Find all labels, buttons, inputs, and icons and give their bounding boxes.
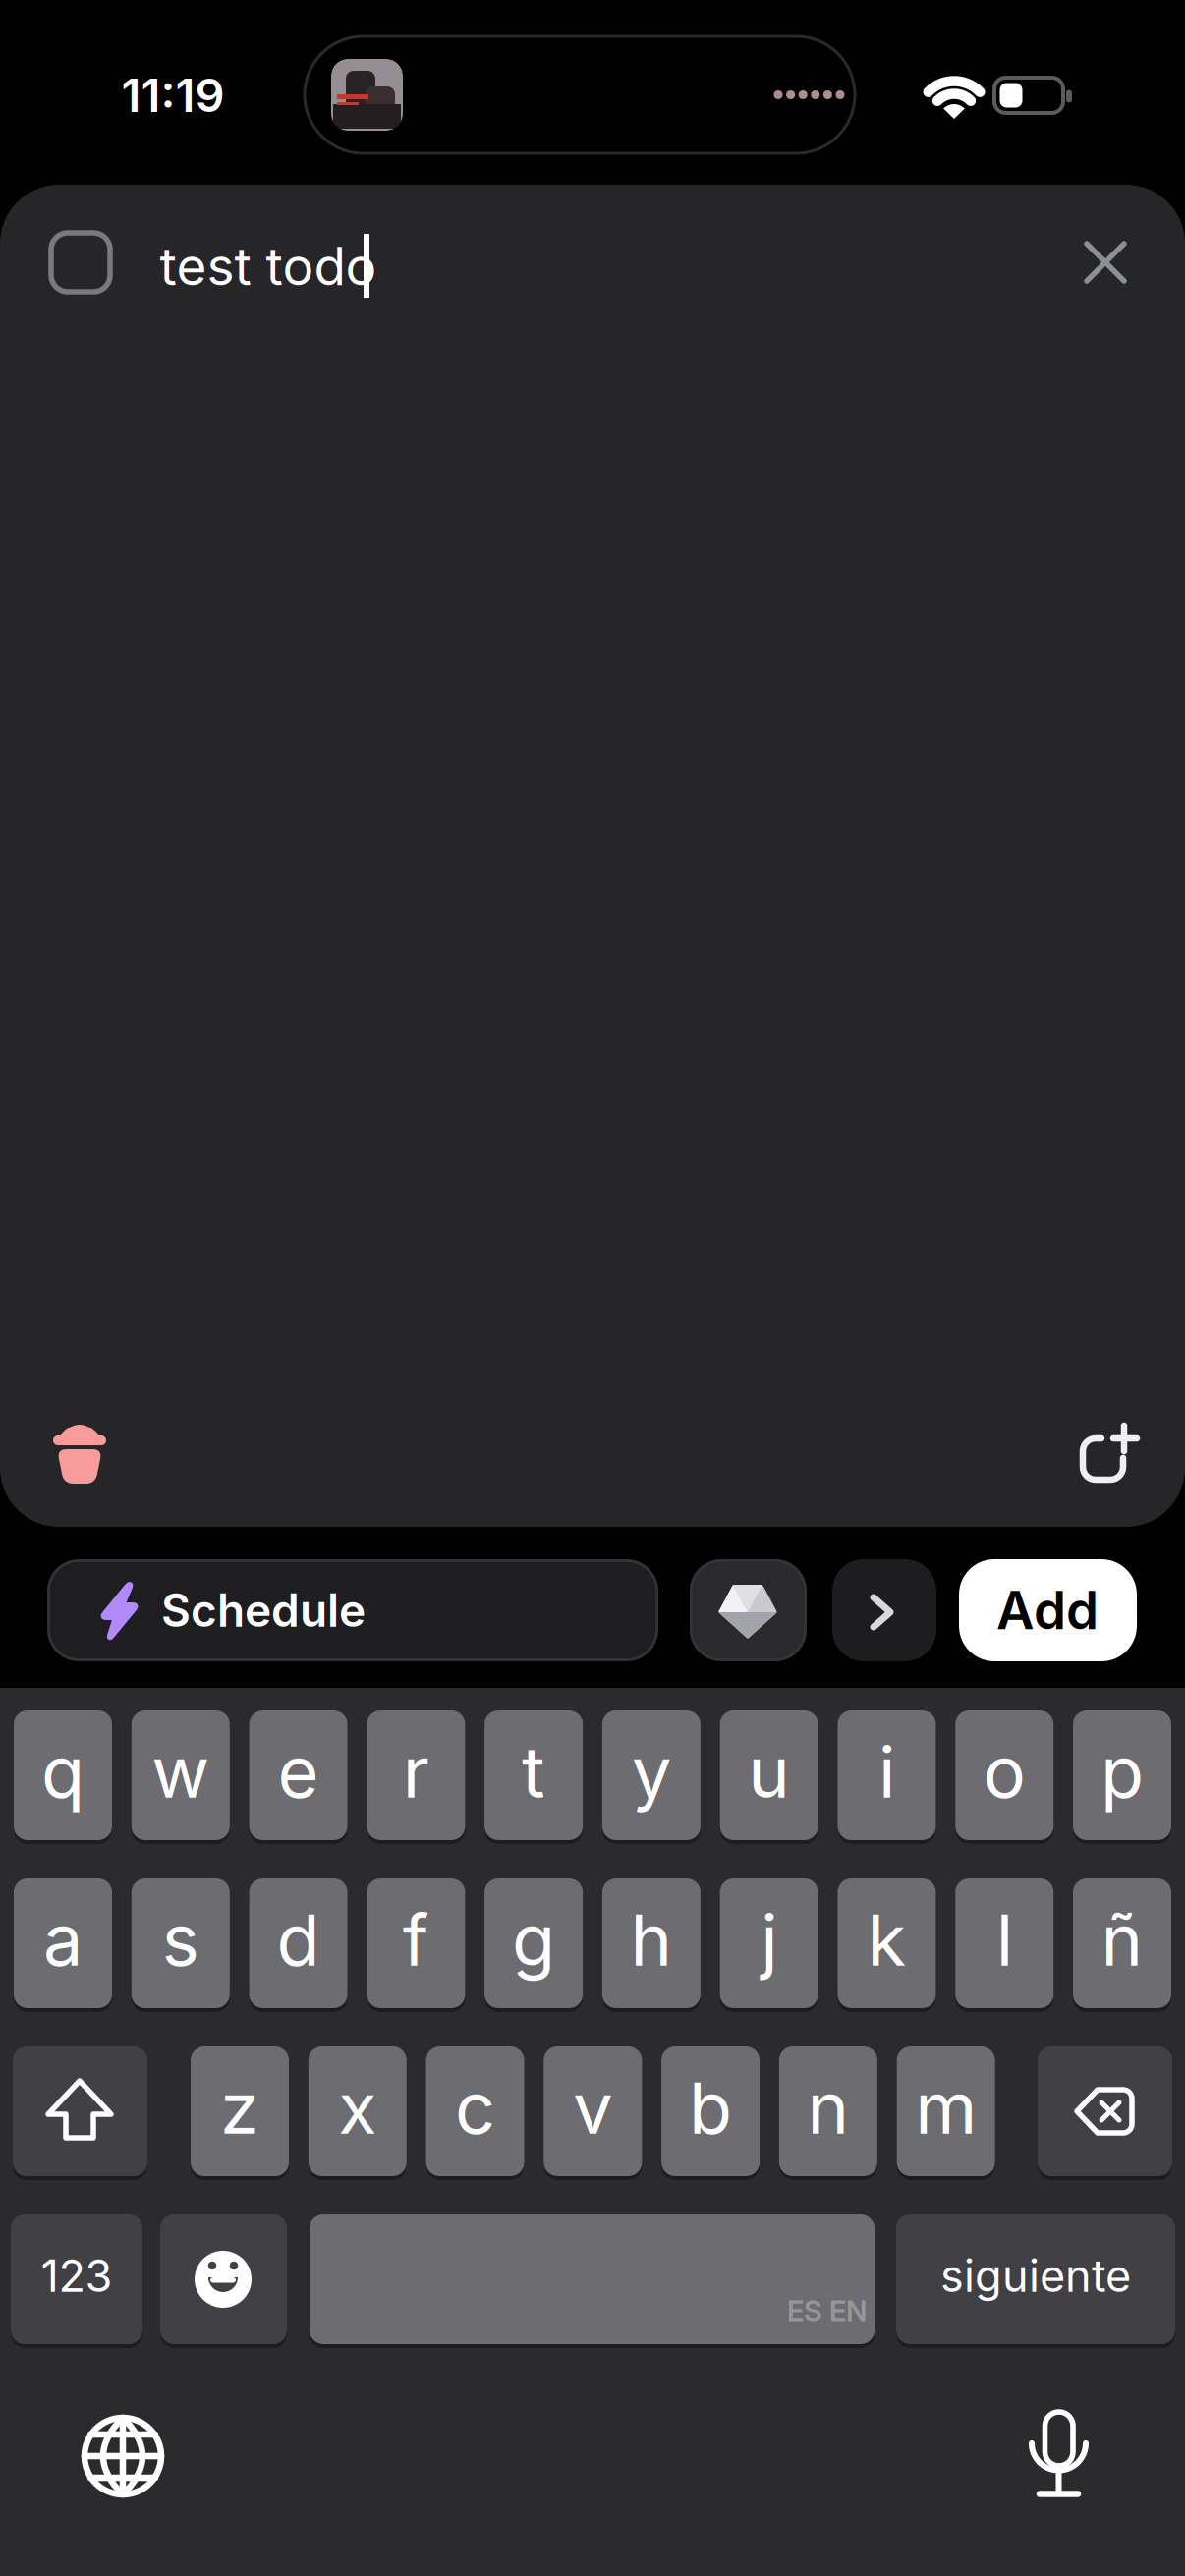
- staticText: h: [630, 1897, 672, 1983]
- staticText: j: [761, 1897, 777, 1983]
- staticText: k: [867, 1897, 906, 1983]
- staticText: ES EN: [787, 2294, 868, 2328]
- staticText: f: [403, 1897, 429, 1983]
- staticText: m: [915, 2065, 977, 2151]
- staticText: test todo: [160, 235, 377, 298]
- staticText: r: [403, 1729, 429, 1815]
- staticText: s: [162, 1897, 199, 1983]
- staticText: siguiente: [940, 2249, 1131, 2303]
- staticText: Schedule: [161, 1583, 366, 1638]
- staticText: 11:19: [121, 67, 225, 123]
- staticText: g: [512, 1897, 555, 1983]
- staticText: d: [277, 1897, 320, 1983]
- staticText: w: [152, 1729, 210, 1815]
- staticText: t: [522, 1729, 545, 1815]
- staticText: v: [573, 2065, 612, 2151]
- staticText: l: [996, 1897, 1013, 1983]
- staticText: b: [689, 2065, 732, 2151]
- staticText: n: [807, 2065, 849, 2151]
- staticText: o: [983, 1729, 1026, 1815]
- staticText: x: [338, 2065, 377, 2151]
- staticText: q: [41, 1729, 85, 1815]
- staticText: Add: [996, 1579, 1099, 1642]
- staticText: z: [220, 2065, 259, 2151]
- staticText: ñ: [1101, 1897, 1143, 1983]
- staticText: u: [748, 1729, 790, 1815]
- staticText: p: [1100, 1729, 1144, 1815]
- staticText: i: [878, 1729, 895, 1815]
- staticText: e: [278, 1729, 319, 1815]
- staticText: 123: [41, 2249, 113, 2303]
- staticText: c: [455, 2065, 495, 2151]
- staticText: a: [43, 1897, 83, 1983]
- staticText: y: [632, 1729, 671, 1815]
